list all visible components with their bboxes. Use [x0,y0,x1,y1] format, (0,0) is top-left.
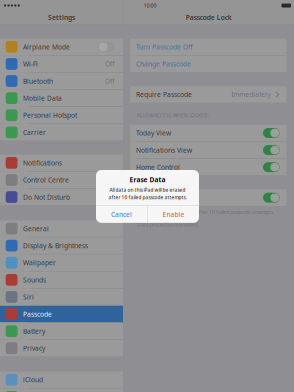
staticText: Data protection is enabled. [137,221,199,228]
button[interactable]: Mobile Data [0,90,123,106]
staticText: Turn Passcode Off [136,42,193,51]
button[interactable]: iCloud [0,371,123,388]
staticText: Mobile Data [23,94,62,103]
button[interactable]: Display & Brightness [0,237,123,254]
staticText: Passcode [23,309,52,319]
button[interactable]: Home Control [130,159,286,175]
button[interactable]: iTunes & App Store [0,389,123,392]
staticText: Home Control [136,163,180,172]
staticText: Enable [162,210,184,219]
staticText: Off [105,59,115,68]
staticText: Carrier [23,128,46,137]
button[interactable]: Cancel [96,206,147,223]
button[interactable]: Sounds [0,272,123,288]
staticText: Wi-Fi [23,59,38,68]
button[interactable]: Personal Hotspot [0,107,123,123]
staticText: Wallpaper [23,258,56,267]
staticText: Battery [23,327,45,336]
staticText: Erase Data [136,193,171,202]
button[interactable]: Control Centre [0,172,123,188]
button[interactable]: Enable [148,206,199,223]
staticText: General [23,224,49,233]
staticText: Cancel [111,210,132,219]
staticText: Sounds [23,275,46,284]
staticText: Change Passcode [136,59,191,68]
button[interactable]: Bluetooth [0,73,123,89]
button[interactable]: Do Not Disturb [0,189,123,205]
button[interactable]: Turn Passcode Off [130,39,286,55]
staticText: Settings [48,13,75,22]
button[interactable]: Carrier [0,124,123,141]
staticText: Airplane Mode [23,42,70,51]
staticText: after 10 failed passcode attempts. [108,194,186,201]
staticText: Personal Hotspot [23,111,77,120]
staticText: Bluetooth [23,76,53,86]
staticText: iCloud [23,375,43,384]
staticText: Off [105,76,115,86]
staticText: All data on this iPad will be erased [109,187,185,193]
staticText: Control Centre [23,175,69,184]
staticText: Immediately [231,90,270,99]
button[interactable]: Require Passcode [130,86,286,103]
staticText: Display & Brightness [23,241,88,250]
staticText: Passcode Lock [186,13,232,22]
button[interactable]: Notifications [0,155,123,171]
staticText: Require Passcode [136,90,192,99]
staticText: ALLOW ACCESS WHEN LOCKED: [137,112,209,119]
staticText: Do Not Disturb [23,192,70,202]
button[interactable]: Change Passcode [130,56,286,72]
button[interactable]: Today View [130,125,286,141]
staticText: Erase all data on this iPad after 10 fai… [137,209,274,215]
button[interactable]: Battery [0,323,123,339]
staticText: Notifications [23,158,62,167]
button[interactable]: Erase Data [130,189,286,206]
staticText: Siri [23,292,34,301]
staticText: 10:00 [143,2,156,9]
staticText: Notifications View [136,145,192,155]
button[interactable]: Wi-Fi [0,56,123,72]
button[interactable]: Siri [0,289,123,305]
staticText: Today View [136,128,171,137]
button[interactable]: Airplane Mode [0,39,123,55]
button[interactable]: Notifications View [130,142,286,158]
staticText: Privacy [23,344,45,353]
button[interactable]: General [0,220,123,237]
staticText: Erase Data [129,175,165,184]
button[interactable]: Privacy [0,340,123,356]
button[interactable]: Passcode [0,306,123,322]
button[interactable]: Wallpaper [0,254,123,271]
